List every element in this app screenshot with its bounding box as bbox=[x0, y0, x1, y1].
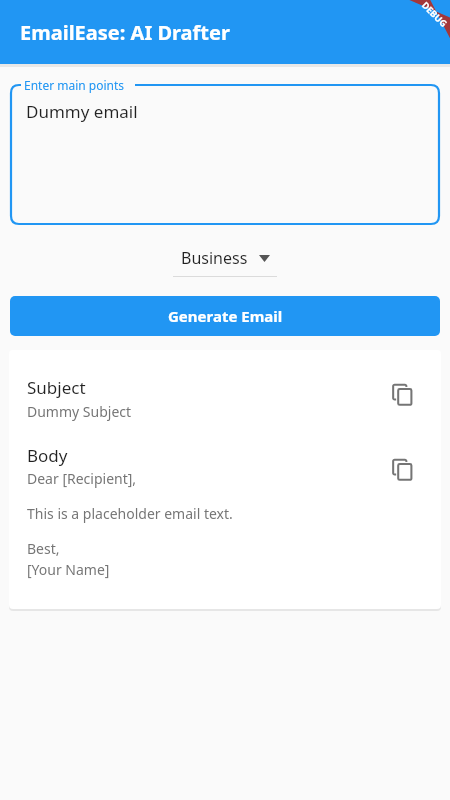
button[interactable]: Subject bbox=[9, 350, 441, 425]
staticText: This is a placeholder email text. bbox=[27, 504, 233, 523]
staticText: Dummy Subject bbox=[27, 402, 132, 421]
staticText: Business bbox=[181, 247, 248, 269]
button[interactable]: Copy subject bbox=[383, 375, 423, 415]
staticText: Body bbox=[27, 444, 68, 467]
staticText: Subject bbox=[27, 376, 86, 399]
button[interactable]: Copy body bbox=[383, 450, 423, 490]
staticText: Best, bbox=[27, 539, 60, 558]
staticText: Generate Email bbox=[168, 306, 283, 326]
staticText: EmailEase: AI Drafter bbox=[20, 19, 230, 46]
button[interactable]: Business bbox=[173, 247, 277, 277]
staticText: Enter main points bbox=[24, 77, 125, 93]
staticText: Dear [Recipient], bbox=[27, 469, 137, 488]
button[interactable]: Enter main points bbox=[11, 76, 439, 224]
button[interactable]: Generate Email bbox=[10, 296, 440, 336]
staticText: [Your Name] bbox=[27, 560, 110, 579]
button[interactable]: Body bbox=[9, 425, 441, 609]
staticText: Dummy email bbox=[26, 100, 138, 123]
